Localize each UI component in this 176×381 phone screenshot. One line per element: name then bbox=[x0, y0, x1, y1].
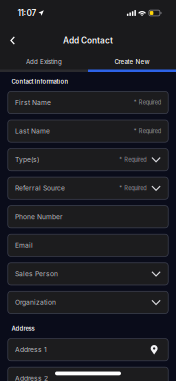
staticText: * Required bbox=[134, 99, 161, 106]
staticText: Add Existing bbox=[26, 58, 62, 65]
staticText: Phone Number bbox=[15, 213, 63, 221]
staticText: Email bbox=[15, 241, 33, 249]
staticText: Type(s) bbox=[15, 156, 39, 164]
button[interactable]: Referral Source bbox=[8, 177, 168, 199]
button[interactable]: Create New bbox=[88, 58, 176, 72]
button[interactable]: Sales Person bbox=[8, 263, 168, 285]
button[interactable]: Address 1 bbox=[8, 339, 168, 361]
button[interactable]: Last Name bbox=[8, 120, 168, 142]
button[interactable]: Type(s) bbox=[8, 148, 168, 171]
staticText: Referral Source bbox=[15, 184, 65, 192]
staticText: Sales Person bbox=[15, 270, 58, 278]
button[interactable]: Phone Number bbox=[8, 206, 168, 228]
staticText: 11:07 bbox=[18, 8, 37, 18]
staticText: Create New bbox=[114, 58, 149, 65]
button[interactable]: Back bbox=[0, 31, 24, 50]
staticText: Address 2 bbox=[15, 374, 48, 381]
button[interactable]: Address 2 bbox=[8, 367, 168, 381]
button[interactable]: First Name bbox=[8, 91, 168, 114]
staticText: Add Contact bbox=[63, 35, 113, 45]
staticText: * Required bbox=[134, 128, 161, 134]
staticText: Address 1 bbox=[15, 346, 47, 354]
staticText: Contact Information bbox=[11, 78, 68, 85]
staticText: Organization bbox=[15, 298, 56, 306]
button[interactable]: Email bbox=[8, 234, 168, 256]
button[interactable]: Add Existing bbox=[0, 58, 88, 72]
staticText: Address bbox=[11, 325, 34, 332]
staticText: * Required bbox=[119, 156, 146, 163]
staticText: * Required bbox=[119, 185, 146, 192]
button[interactable]: Organization bbox=[8, 291, 168, 313]
staticText: Last Name bbox=[15, 127, 50, 135]
staticText: First Name bbox=[15, 98, 51, 107]
